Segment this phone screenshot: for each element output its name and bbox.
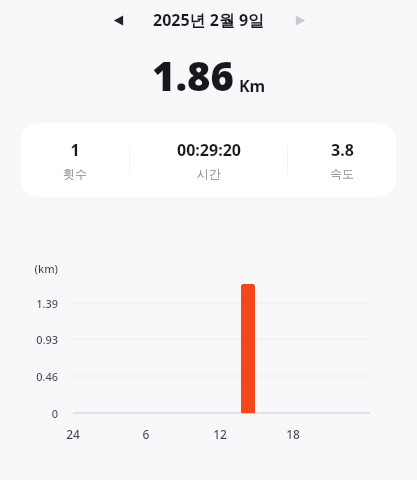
staticText: 1.86 bbox=[152, 48, 234, 102]
staticText: 00:29:20 bbox=[177, 139, 241, 161]
staticText: 0.46 bbox=[0, 369, 58, 384]
staticText: 0.93 bbox=[0, 332, 58, 347]
staticText: 1 bbox=[70, 139, 80, 161]
staticText: 18 bbox=[273, 426, 313, 442]
staticText: 24 bbox=[53, 426, 93, 442]
staticText: 속도 bbox=[330, 166, 354, 181]
staticText: 6 bbox=[126, 426, 166, 442]
staticText: 2025년 2월 9일 bbox=[153, 9, 265, 31]
staticText: 1.39 bbox=[0, 296, 58, 311]
staticText: 12 bbox=[200, 426, 240, 442]
staticText: 3.8 bbox=[331, 139, 354, 161]
staticText: 시간 bbox=[197, 166, 221, 181]
button[interactable]: Next day bbox=[287, 7, 313, 33]
staticText: 0 bbox=[0, 406, 58, 421]
staticText: (km) bbox=[0, 261, 58, 276]
button[interactable]: 1 bbox=[21, 123, 396, 197]
staticText: Km bbox=[239, 75, 266, 97]
staticText: 횟수 bbox=[63, 166, 87, 181]
button[interactable]: Previous day bbox=[105, 7, 131, 33]
